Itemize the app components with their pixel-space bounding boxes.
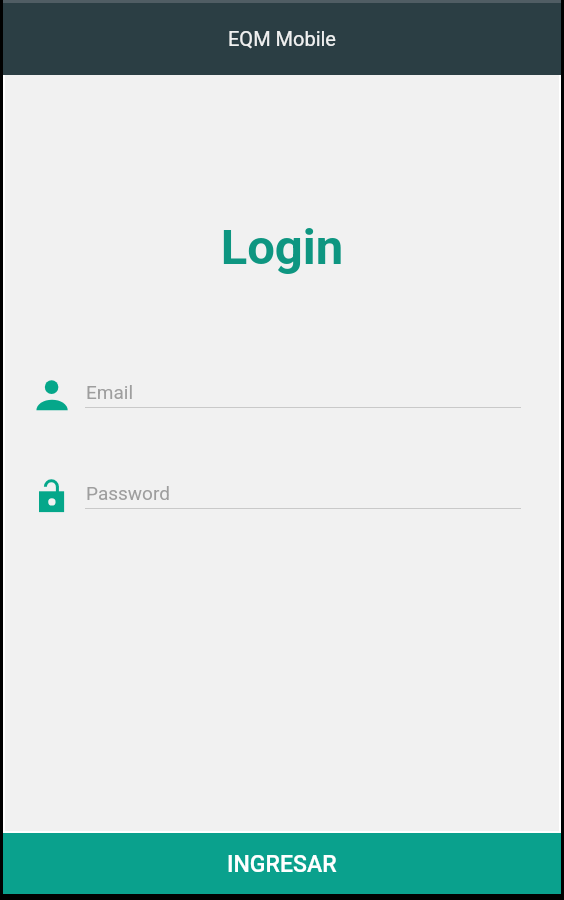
button[interactable]: EQM Mobile	[3, 3, 561, 75]
staticText: Login	[5, 219, 559, 276]
button[interactable]: INGRESAR	[3, 833, 561, 894]
button[interactable]: Email	[5, 375, 559, 419]
staticText: Password	[86, 482, 170, 504]
staticText: Email	[86, 381, 134, 403]
button[interactable]: Password	[5, 476, 559, 520]
staticText: EQM Mobile	[228, 27, 336, 50]
staticText: INGRESAR	[227, 851, 337, 878]
